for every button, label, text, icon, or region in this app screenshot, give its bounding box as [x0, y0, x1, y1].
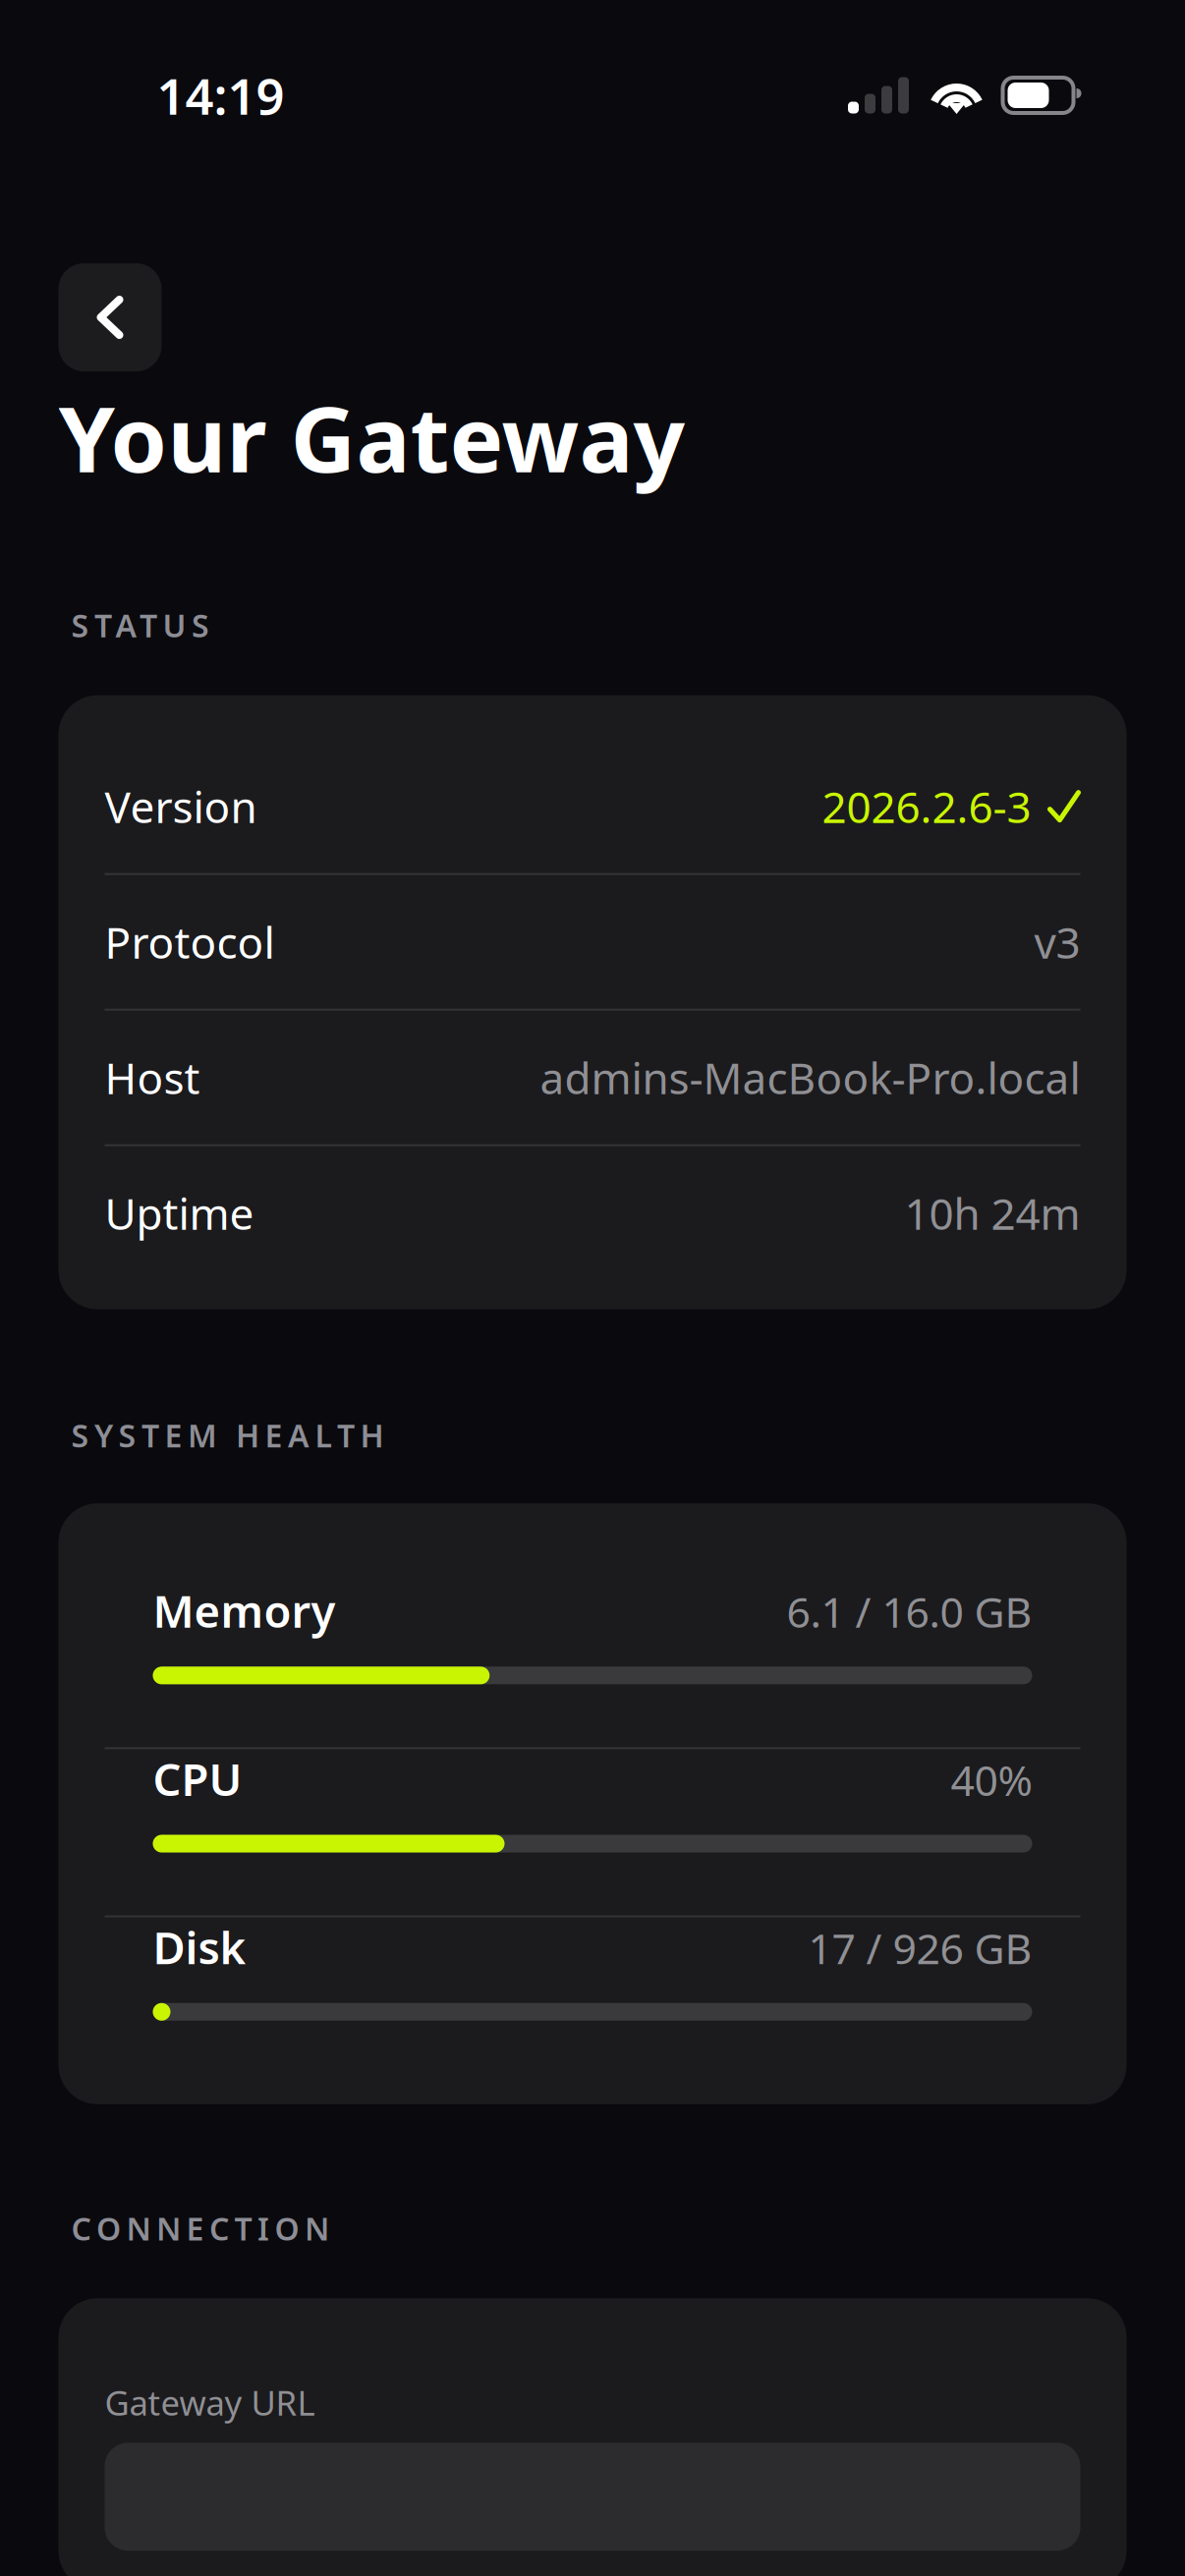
staticText: CONNECTION	[71, 2207, 329, 2249]
staticText: 6.1 / 16.0 GB	[787, 1584, 1032, 1639]
staticText: SYSTEM HEALTH	[71, 1414, 384, 1456]
staticText: 14:19	[157, 62, 284, 128]
staticText: 10h 24m	[904, 1184, 1080, 1242]
staticText: Memory	[153, 1581, 336, 1640]
button[interactable]: Protocol	[58, 875, 1127, 1009]
button[interactable]: Uptime	[58, 1146, 1127, 1280]
staticText: 17 / 926 GB	[808, 1920, 1032, 1976]
button[interactable]: Host	[58, 1011, 1127, 1144]
staticText: v3	[1034, 913, 1080, 971]
staticText: Uptime	[105, 1184, 254, 1242]
button[interactable]: Version	[58, 739, 1127, 873]
staticText: Disk	[153, 1917, 246, 1977]
staticText: Host	[105, 1049, 200, 1106]
staticText: Gateway URL	[105, 2380, 315, 2425]
staticText: Version	[105, 778, 257, 835]
staticText: STATUS	[71, 604, 209, 646]
staticText: admins-MacBook-Pro.local	[540, 1049, 1080, 1106]
button[interactable]: Back	[58, 263, 162, 371]
staticText: Your Gateway	[58, 377, 685, 497]
staticText: Protocol	[105, 913, 275, 971]
staticText: 40%	[951, 1752, 1032, 1808]
staticText: 2026.2.6-3	[822, 778, 1031, 835]
staticText: CPU	[153, 1749, 242, 1808]
